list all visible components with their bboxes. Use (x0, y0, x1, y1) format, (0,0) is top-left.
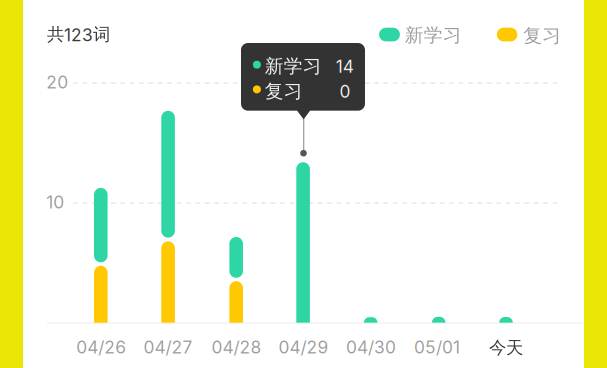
staticText: 14 (336, 56, 354, 77)
staticText: 04/27 (143, 337, 192, 358)
staticText: 04/30 (346, 337, 396, 358)
staticText: 04/29 (278, 337, 328, 358)
button[interactable]: 新学习 (0, 0, 607, 368)
staticText: 新学习 (405, 23, 462, 47)
staticText: 新学习 (265, 54, 322, 78)
staticText: 复习 (265, 80, 303, 103)
staticText: 复习 (523, 24, 561, 47)
staticText: 10 (46, 192, 64, 213)
staticText: 04/28 (212, 337, 262, 358)
staticText: 04/26 (76, 337, 126, 358)
staticText: 今天 (489, 337, 523, 359)
staticText: 共123词 (47, 24, 110, 45)
staticText: 0 (339, 81, 350, 102)
staticText: 05/01 (414, 337, 460, 358)
staticText: 20 (46, 72, 68, 93)
button[interactable]: 复习 (0, 0, 607, 368)
